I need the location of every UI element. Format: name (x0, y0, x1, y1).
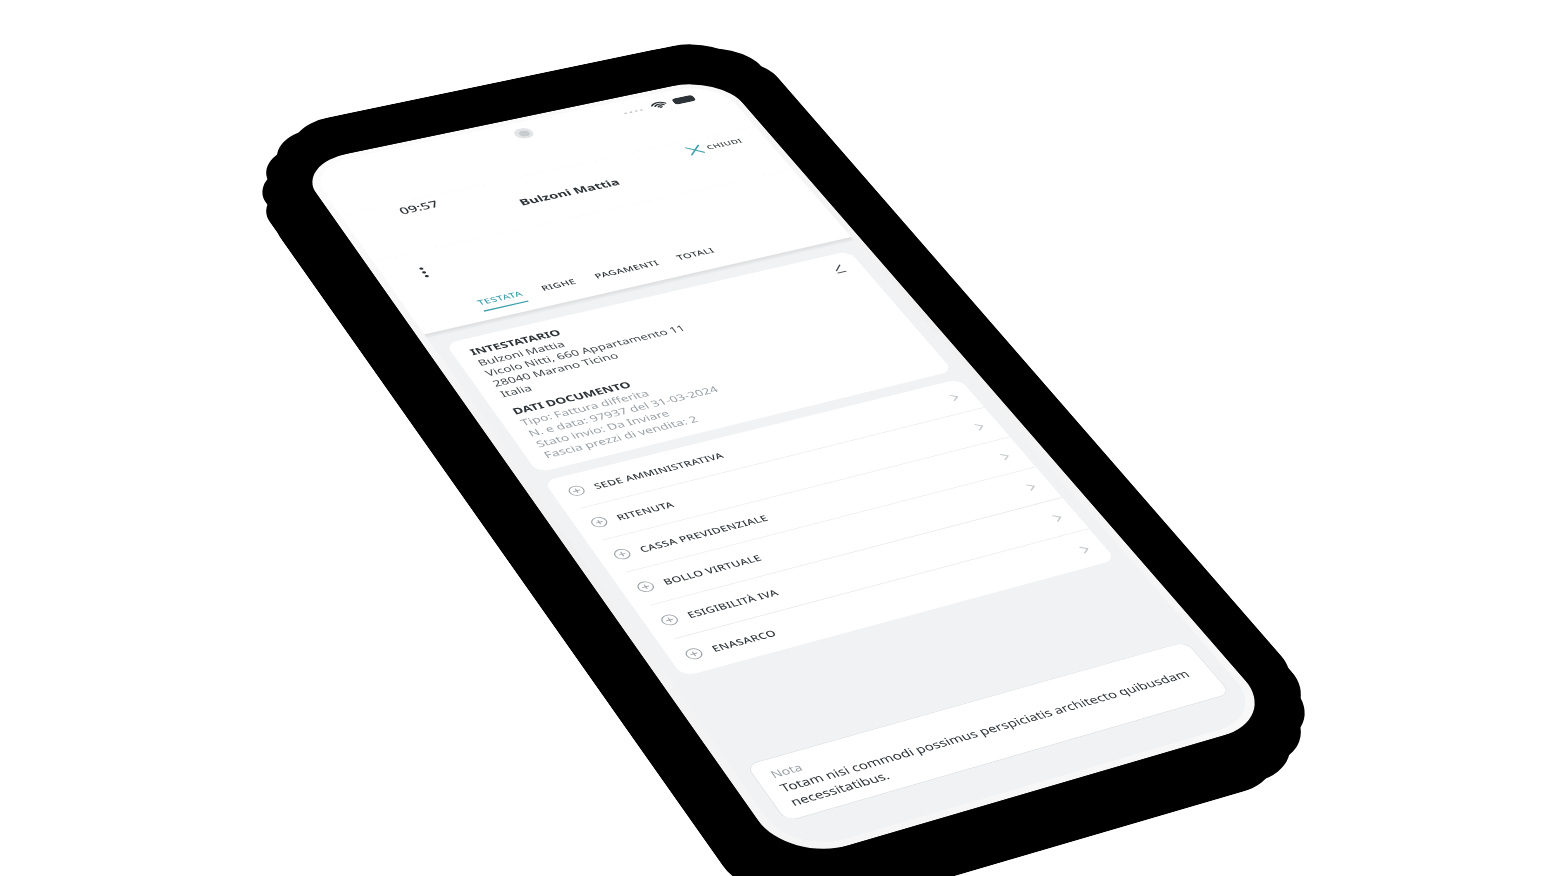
button[interactable]: RITENUTA (565, 408, 1010, 544)
staticText: Fascia prezzi di vendita: 2 (541, 413, 701, 461)
button[interactable]: TOTALI (625, 194, 736, 276)
button[interactable]: More options (398, 258, 449, 286)
button[interactable]: CHIUDI (670, 129, 762, 162)
staticText: DATI DOCUMENTO (509, 378, 634, 417)
button[interactable]: INTESTATARIO (445, 251, 953, 473)
staticText: TOTALI (674, 245, 717, 262)
staticText: 09:57 (396, 197, 442, 217)
staticText: ESIGIBILITÀ IVA (684, 587, 781, 620)
staticText: RITENUTA (614, 499, 677, 522)
staticText: N. e data: 97937 del 31-03-2024 (525, 383, 721, 439)
button[interactable]: ESIGIBILITÀ IVA (635, 498, 1089, 643)
staticText: Bulzoni Mattia (516, 176, 623, 208)
button[interactable]: BOLLO VIRTUALE (611, 467, 1062, 609)
button[interactable]: Nota (745, 641, 1232, 822)
staticText: Nota (767, 760, 806, 781)
staticText: Italia (497, 382, 535, 400)
staticText: CASSA PREVIDENZIALE (637, 512, 771, 554)
button[interactable]: TESTATA (428, 236, 544, 322)
staticText: 28040 Marano Ticino (490, 349, 622, 389)
staticText: BOLLO VIRTUALE (660, 552, 765, 587)
staticText: CHIUDI (704, 136, 745, 151)
staticText: ENASARCO (709, 627, 780, 654)
staticText: Totam nisi commodi possimus perspiciatis… (776, 665, 1210, 809)
staticText: SEDE AMMINISTRATIVA (591, 450, 726, 491)
staticText: Vicolo Nitti, 660 Appartamento 11 (482, 322, 688, 379)
staticText: PAGAMENTI (592, 258, 661, 280)
button[interactable]: ENASARCO (659, 529, 1116, 677)
button[interactable]: Edit (823, 260, 854, 277)
button[interactable]: SEDE AMMINISTRATIVA (543, 379, 984, 512)
button[interactable]: CASSA PREVIDENZIALE (588, 437, 1036, 576)
staticText: Bulzoni Mattia (475, 338, 568, 368)
staticText: Tipo: Fattura differita (517, 387, 652, 428)
staticText: RIGHE (538, 276, 579, 292)
button[interactable]: RIGHE (491, 224, 598, 307)
staticText: INTESTATARIO (467, 327, 563, 357)
staticText: Stato invio: Da Inviare (533, 407, 672, 450)
button[interactable]: PAGAMENTI (543, 206, 681, 295)
staticText: TESTATA (475, 289, 525, 307)
